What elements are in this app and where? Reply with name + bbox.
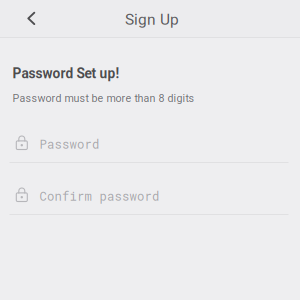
button[interactable]: Back: [16, 3, 46, 33]
staticText: Sign Up: [125, 10, 179, 29]
button[interactable]: Password: [0, 123, 300, 175]
staticText: Password: [39, 136, 99, 152]
staticText: Password Set up!: [12, 65, 119, 82]
button[interactable]: Confirm password: [0, 175, 300, 227]
staticText: Confirm password: [39, 188, 159, 204]
staticText: Password must be more than 8 digits: [12, 92, 194, 104]
